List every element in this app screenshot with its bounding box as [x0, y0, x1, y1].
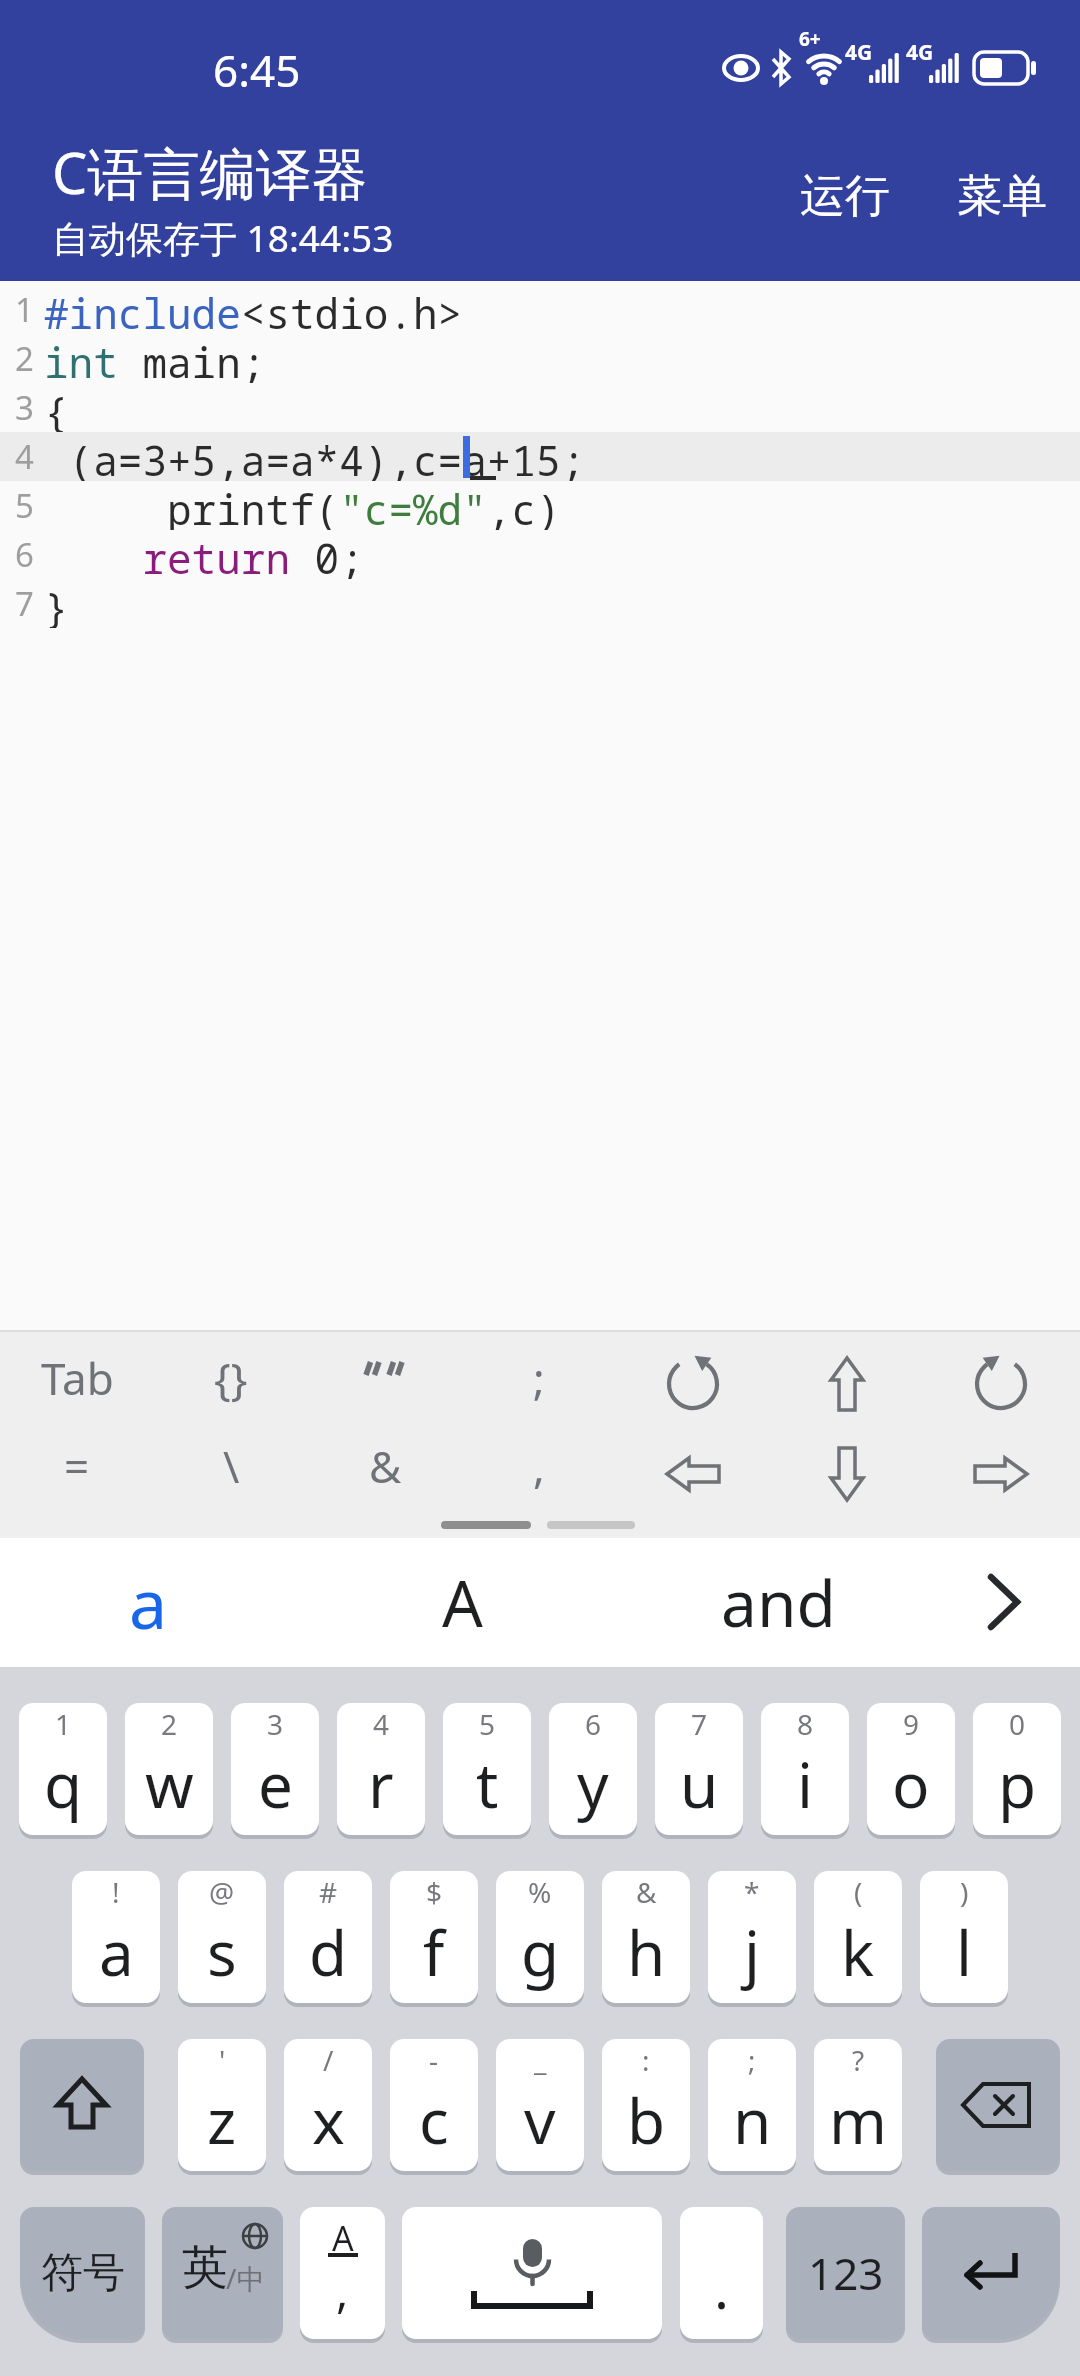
button[interactable]: &	[602, 1871, 690, 2003]
button[interactable]: 菜单	[952, 160, 1052, 232]
button[interactable]: =	[0, 1426, 154, 1506]
staticText: 4	[15, 434, 34, 479]
button[interactable]	[308, 1338, 462, 1418]
staticText: 5	[15, 483, 34, 528]
button[interactable]: \	[154, 1426, 308, 1506]
button[interactable]: 4	[337, 1703, 425, 1835]
staticText: y	[577, 1742, 609, 1826]
staticText: 9	[903, 1705, 920, 1741]
staticText: &	[636, 1873, 657, 1909]
button[interactable]	[924, 1426, 1078, 1506]
button[interactable]: :	[602, 2039, 690, 2171]
button[interactable]: ;	[462, 1338, 616, 1418]
button[interactable]	[770, 1426, 924, 1506]
button[interactable]: !	[72, 1871, 160, 2003]
button[interactable]: 符号	[20, 2207, 145, 2339]
button[interactable]: (	[814, 1871, 902, 2003]
button[interactable]: 9	[867, 1703, 955, 1835]
staticText: x	[312, 2078, 345, 2162]
button[interactable]: -	[390, 2039, 478, 2171]
staticText: :	[642, 2041, 650, 2077]
button[interactable]: 运行	[795, 160, 895, 232]
button[interactable]: ;	[708, 2039, 796, 2171]
button[interactable]: Tab	[0, 1338, 154, 1418]
button[interactable]: /	[284, 2039, 372, 2171]
staticText: *	[744, 1873, 760, 1909]
button[interactable]: _	[496, 2039, 584, 2171]
staticText: 6	[585, 1705, 602, 1741]
button[interactable]	[950, 1546, 1060, 1658]
staticText: ;	[748, 2041, 756, 2077]
staticText: 6:45	[213, 40, 301, 96]
button[interactable]	[936, 2039, 1060, 2171]
button[interactable]: 6	[549, 1703, 637, 1835]
button[interactable]: 2	[125, 1703, 213, 1835]
staticText: 6	[15, 532, 34, 577]
button[interactable]: a	[40, 1546, 256, 1658]
button[interactable]: @	[178, 1871, 266, 2003]
staticText: $	[426, 1873, 443, 1909]
staticText: return 0;	[44, 530, 364, 579]
button[interactable]: )	[920, 1871, 1008, 2003]
staticText: \	[223, 1436, 240, 1496]
staticText: !	[112, 1873, 120, 1909]
staticText: 符号	[41, 2247, 125, 2300]
button[interactable]: 123	[786, 2207, 905, 2339]
button[interactable]: '	[178, 2039, 266, 2171]
staticText: i	[797, 1742, 813, 1826]
staticText: 自动保存于 18:44:53	[52, 212, 394, 260]
button[interactable]: 英	[162, 2207, 283, 2339]
staticText: s	[207, 1910, 237, 1994]
button[interactable]: *	[708, 1871, 796, 2003]
button[interactable]: 8	[761, 1703, 849, 1835]
staticText: 5	[479, 1705, 496, 1741]
button[interactable]: ?	[814, 2039, 902, 2171]
staticText: &	[369, 1436, 402, 1496]
staticText: c	[419, 2078, 449, 2162]
staticText: a	[99, 1910, 134, 1994]
button[interactable]	[770, 1338, 924, 1418]
button[interactable]: A	[354, 1546, 570, 1658]
staticText: %	[528, 1873, 552, 1909]
staticText: a	[129, 1556, 168, 1649]
staticText: 3	[15, 385, 34, 430]
button[interactable]: #	[284, 1871, 372, 2003]
staticText: 6+	[799, 26, 821, 50]
staticText: 1	[55, 1705, 72, 1741]
button[interactable]: $	[390, 1871, 478, 2003]
staticText: n	[733, 2078, 772, 2162]
button[interactable]	[924, 1338, 1078, 1418]
staticText: 运行	[800, 168, 890, 225]
button[interactable]: 5	[443, 1703, 531, 1835]
button[interactable]	[402, 2207, 662, 2339]
staticText: int main;	[44, 334, 266, 383]
staticText: ;	[533, 1348, 545, 1408]
button[interactable]: &	[308, 1426, 462, 1506]
staticText: 7	[15, 581, 34, 626]
staticText: 2	[15, 336, 34, 381]
button[interactable]	[922, 2207, 1060, 2339]
button[interactable]: 3	[231, 1703, 319, 1835]
staticText: f	[423, 1910, 445, 1994]
staticText: j	[744, 1910, 760, 1994]
button[interactable]	[616, 1426, 770, 1506]
button[interactable]: ,	[462, 1426, 616, 1506]
button[interactable]: 0	[973, 1703, 1061, 1835]
button[interactable]: 7	[655, 1703, 743, 1835]
staticText: ?	[852, 2041, 865, 2077]
button[interactable]	[616, 1338, 770, 1418]
staticText: 4G	[845, 38, 873, 66]
button[interactable]: %	[496, 1871, 584, 2003]
button[interactable]: .	[680, 2207, 763, 2339]
staticText: u	[680, 1742, 719, 1826]
button[interactable]	[20, 2039, 144, 2171]
staticText: 2	[161, 1705, 178, 1741]
staticText: =	[64, 1436, 90, 1496]
staticText: C语言编译器	[52, 134, 368, 208]
button[interactable]: 1	[19, 1703, 107, 1835]
button[interactable]: {}	[154, 1338, 308, 1418]
button[interactable]: and	[670, 1546, 886, 1658]
staticText: k	[841, 1910, 875, 1994]
staticText: (a=3+5,a=a*4),c=a+15;	[44, 432, 586, 481]
button[interactable]: A	[300, 2207, 385, 2339]
